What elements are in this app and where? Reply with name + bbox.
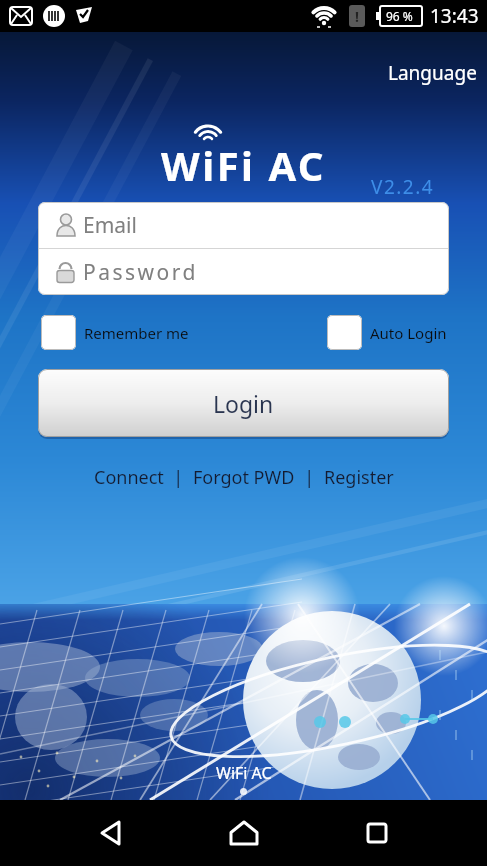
button[interactable]: Login [38,369,449,437]
button[interactable]: Language [388,60,477,86]
staticText: Email [83,211,137,240]
staticText: Register [324,465,394,490]
staticText: Auto Login [370,323,447,343]
staticText: WiFi AC [216,762,272,784]
staticText: Language [388,60,477,86]
staticText: Forgot PWD [193,465,295,490]
staticText: Login [213,388,274,419]
button[interactable] [66,800,154,866]
button[interactable]: Connect [94,465,164,490]
button[interactable]: Email [38,202,449,248]
button[interactable]: Forgot PWD [193,465,295,490]
button[interactable]: Password [38,249,449,295]
staticText: WiFi AC [161,138,327,192]
staticText: Password [83,258,198,287]
button[interactable]: Remember me [41,315,189,350]
staticText: | [295,465,324,490]
button[interactable]: Register [324,465,394,490]
button[interactable]: Auto Login [327,315,447,350]
staticText: 13:43 [430,3,479,29]
button[interactable] [200,800,288,866]
staticText: V2.2.4 [371,174,435,200]
staticText: ! [355,7,359,26]
staticText: Remember me [84,323,189,343]
staticText: 96 % [386,8,413,24]
staticText: Connect [94,465,164,490]
staticText: | [164,465,193,490]
button[interactable] [333,800,421,866]
